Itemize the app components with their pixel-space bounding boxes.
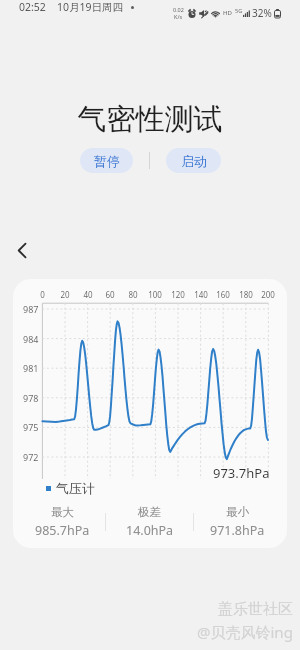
staticText: 180 <box>239 289 253 300</box>
staticText: 20 <box>60 289 70 300</box>
staticText: 40 <box>83 289 93 300</box>
staticText: 160 <box>216 289 230 300</box>
button[interactable]: 暂停 <box>80 148 133 173</box>
staticText: 最小 <box>226 505 249 519</box>
staticText: 200 <box>261 289 275 300</box>
staticText: 80 <box>128 289 138 300</box>
staticText: 972 <box>23 451 39 463</box>
staticText: HD <box>223 9 232 17</box>
button[interactable]: 启动 <box>166 148 221 173</box>
staticText: 气压计 <box>56 480 95 496</box>
button[interactable]: Back <box>8 236 36 264</box>
staticText: 10月19日周四 <box>57 0 124 14</box>
staticText: 975 <box>23 421 39 433</box>
staticText: 极差 <box>138 505 161 519</box>
staticText: 盖乐世社区 <box>218 600 293 619</box>
staticText: 暂停 <box>94 153 120 169</box>
staticText: 973.7hPa <box>213 464 270 482</box>
staticText: 最大 <box>51 505 74 519</box>
staticText: 987 <box>23 303 39 315</box>
staticText: 984 <box>23 333 39 345</box>
staticText: 100 <box>148 289 162 300</box>
staticText: 120 <box>171 289 185 300</box>
staticText: 气密性测试 <box>0 101 300 138</box>
staticText: 985.7hPa <box>35 522 90 539</box>
staticText: 5G <box>235 7 243 14</box>
staticText: 启动 <box>181 153 207 169</box>
staticText: 0 <box>40 289 45 300</box>
staticText: 14.0hPa <box>126 522 174 539</box>
staticText: 978 <box>23 392 39 404</box>
staticText: 140 <box>194 289 208 300</box>
staticText: 981 <box>23 362 39 374</box>
staticText: 0.02 <box>173 6 184 13</box>
staticText: 32% <box>252 6 272 20</box>
staticText: K/s <box>174 13 183 20</box>
staticText: 971.8hPa <box>210 522 265 539</box>
staticText: @贝壳风铃ing <box>197 622 293 642</box>
staticText: 60 <box>105 289 115 300</box>
staticText: 02:52 <box>19 0 46 14</box>
